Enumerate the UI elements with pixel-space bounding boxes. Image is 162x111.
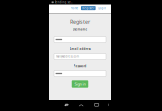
button[interactable]: Register: [81, 6, 96, 10]
staticText: mail@address.com: [56, 55, 79, 58]
button[interactable]: Home: [78, 102, 84, 107]
button[interactable]: Home: [69, 6, 80, 10]
button[interactable]: Back: [64, 102, 70, 107]
button[interactable]: Login: [97, 6, 107, 10]
staticText: Register: [70, 18, 90, 25]
button[interactable]: Menu: [107, 102, 110, 107]
staticText: Username: [72, 28, 87, 31]
staticText: Sending scr…: [55, 0, 73, 4]
staticText: Home: [71, 6, 79, 10]
button[interactable]: Recent apps: [94, 102, 100, 107]
staticText: Login: [98, 6, 106, 10]
staticText: Sign in: [74, 81, 85, 87]
button[interactable]: Sign in: [72, 80, 88, 88]
staticText: Password: [73, 64, 86, 68]
staticText: Register: [82, 6, 94, 10]
staticText: E-mail address: [69, 47, 90, 51]
